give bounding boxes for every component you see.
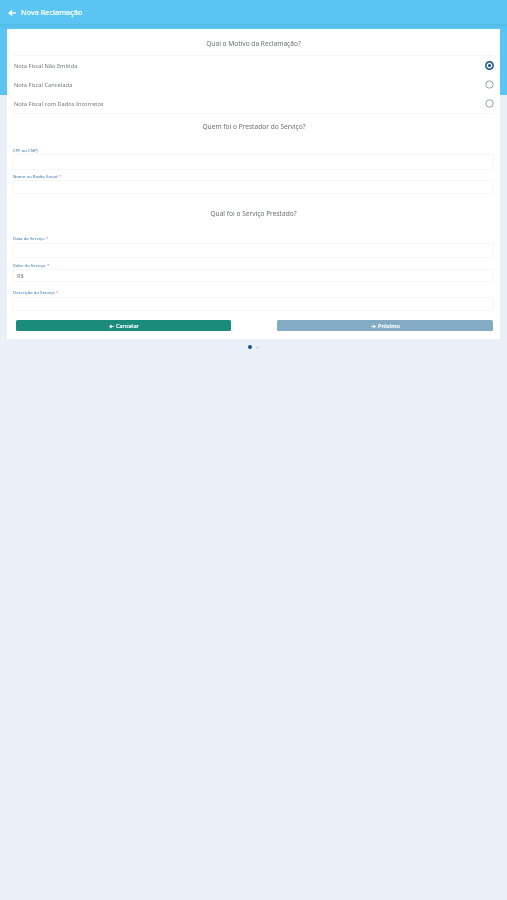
staticText: Nota Fiscal Não Emitida — [14, 62, 78, 70]
staticText: Cancelar — [116, 322, 139, 330]
button[interactable]: Back — [5, 6, 18, 19]
button[interactable]: Nota Fiscal Cancelada — [7, 75, 500, 94]
button[interactable]: Step 1 of 2 — [247, 344, 253, 350]
button[interactable] — [13, 180, 494, 194]
button[interactable]: Próximo — [277, 320, 493, 331]
staticText: Próximo — [378, 322, 400, 330]
staticText: * — [46, 262, 50, 268]
staticText: Nova Reclamação — [21, 7, 83, 17]
button[interactable]: Nota Fiscal Não Emitida — [7, 56, 500, 75]
staticText: Quem foi o Prestador do Serviço? — [202, 122, 306, 131]
button[interactable]: Step 2 of 2 — [254, 344, 260, 350]
staticText: Valor do Serviço — [13, 262, 46, 268]
button[interactable]: Cancelar — [16, 320, 231, 331]
staticText: Nota Fiscal com Dados Incorretos — [14, 100, 104, 108]
button[interactable] — [13, 297, 494, 311]
staticText: * — [45, 235, 49, 241]
button[interactable]: Nota Fiscal com Dados Incorretos — [7, 94, 500, 113]
staticText: * — [58, 173, 62, 179]
button[interactable] — [13, 243, 494, 258]
button[interactable]: R$ — [13, 269, 494, 282]
staticText: Descrição do Serviço — [13, 289, 55, 295]
staticText: Qual foi o Serviço Prestado? — [210, 209, 297, 218]
staticText: * — [55, 289, 59, 295]
staticText: Data do Serviço — [13, 235, 45, 241]
staticText: Qual o Motivo da Reclamação? — [206, 39, 301, 48]
button[interactable] — [13, 154, 494, 170]
staticText: Nota Fiscal Cancelada — [14, 81, 73, 89]
staticText: Nome ou Razão Social — [13, 173, 58, 179]
staticText: CPF ou CNPJ — [13, 147, 38, 153]
staticText: R$ — [17, 272, 24, 280]
